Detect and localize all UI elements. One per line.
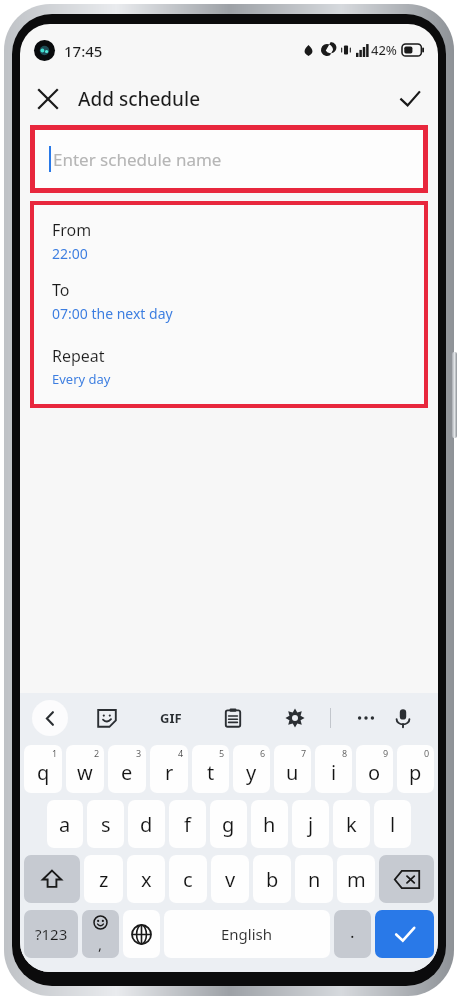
button[interactable]: Clipboard (216, 701, 250, 735)
staticText: t (207, 759, 215, 786)
staticText: o (368, 759, 381, 786)
staticText: 5 (219, 747, 225, 759)
button[interactable]: Voice input (386, 701, 420, 735)
staticText: 07:00 the next day (52, 304, 173, 323)
staticText: ?123 (35, 924, 68, 944)
staticText: 4 (178, 747, 184, 759)
button[interactable]: 9 (356, 745, 393, 793)
staticText: e (121, 759, 133, 786)
staticText: h (263, 811, 276, 838)
staticText: g (222, 811, 235, 838)
staticText: a (59, 811, 71, 838)
staticText: u (286, 759, 299, 786)
button[interactable]: 1 (24, 745, 62, 793)
button[interactable]: 5 (192, 745, 229, 793)
staticText: p (409, 759, 422, 786)
button[interactable]: v (211, 855, 249, 903)
button[interactable]: x (127, 855, 165, 903)
staticText: q (37, 759, 50, 786)
button[interactable]: 4 (150, 745, 188, 793)
staticText: 2 (94, 747, 100, 759)
staticText: s (101, 811, 111, 838)
button[interactable]: Repeat (52, 345, 424, 388)
button[interactable]: Close (28, 79, 68, 119)
button[interactable]: Stickers (90, 701, 124, 735)
staticText: 1 (52, 747, 58, 759)
button[interactable]: Back (32, 700, 68, 736)
button[interactable]: f (169, 800, 206, 848)
button[interactable]: More options (349, 701, 383, 735)
staticText: 7 (301, 747, 307, 759)
button[interactable]: a (47, 800, 83, 848)
staticText: GIF (160, 709, 182, 727)
button[interactable]: m (337, 855, 375, 903)
staticText: y (246, 759, 257, 786)
button[interactable]: h (251, 800, 288, 848)
staticText: c (183, 866, 193, 893)
button[interactable]: n (295, 855, 333, 903)
button[interactable]: Settings (278, 701, 312, 735)
staticText: 3 (136, 747, 142, 759)
staticText: 0 (424, 747, 430, 759)
button[interactable]: 0 (397, 745, 434, 793)
button[interactable]: 6 (233, 745, 270, 793)
button[interactable]: . (334, 910, 371, 958)
button[interactable]: GIF (154, 701, 188, 735)
button[interactable]: 3 (108, 745, 146, 793)
button[interactable]: To (52, 279, 424, 323)
staticText: f (184, 811, 191, 838)
button[interactable]: 2 (66, 745, 104, 793)
staticText: Add schedule (78, 86, 201, 112)
button[interactable]: From (52, 219, 424, 263)
staticText: x (141, 866, 152, 893)
staticText: Repeat (52, 345, 105, 367)
button[interactable]: s (87, 800, 124, 848)
staticText: 42% (371, 41, 397, 59)
button[interactable]: 8 (315, 745, 352, 793)
button[interactable]: Backspace (379, 855, 434, 903)
staticText: 17:45 (64, 41, 103, 61)
staticText: 6 (260, 747, 266, 759)
button[interactable]: Enter (375, 910, 434, 958)
button[interactable]: Emoji and comma (82, 910, 119, 958)
staticText: l (390, 811, 396, 838)
staticText: To (52, 279, 70, 301)
button[interactable]: c (169, 855, 207, 903)
staticText: 8 (342, 747, 348, 759)
button[interactable]: Save (390, 79, 430, 119)
button[interactable]: l (374, 800, 411, 848)
staticText: From (52, 219, 92, 241)
staticText: k (346, 811, 357, 838)
button[interactable]: Enter schedule name (35, 130, 423, 188)
button[interactable]: d (128, 800, 165, 848)
button[interactable]: English (164, 910, 330, 958)
staticText: Enter schedule name (53, 148, 222, 171)
staticText: d (140, 811, 153, 838)
staticText: , (98, 934, 103, 954)
staticText: v (225, 866, 236, 893)
button[interactable]: z (84, 855, 123, 903)
button[interactable]: g (210, 800, 247, 848)
staticText: 9 (383, 747, 389, 759)
staticText: j (308, 811, 314, 838)
staticText: r (165, 759, 174, 786)
button[interactable]: 7 (274, 745, 311, 793)
button[interactable]: k (333, 800, 370, 848)
staticText: n (308, 866, 321, 893)
staticText: 22:00 (52, 244, 88, 263)
staticText: z (99, 866, 109, 893)
button[interactable]: Change language (123, 910, 160, 958)
staticText: m (347, 866, 366, 893)
button[interactable]: ?123 (24, 910, 78, 958)
staticText: b (266, 866, 279, 893)
staticText: w (77, 759, 93, 786)
staticText: English (221, 924, 273, 944)
staticText: . (350, 920, 355, 943)
staticText: Every day (52, 370, 111, 388)
button[interactable]: Shift (24, 855, 80, 903)
button[interactable]: b (253, 855, 291, 903)
button[interactable]: j (292, 800, 329, 848)
staticText: i (331, 759, 337, 786)
